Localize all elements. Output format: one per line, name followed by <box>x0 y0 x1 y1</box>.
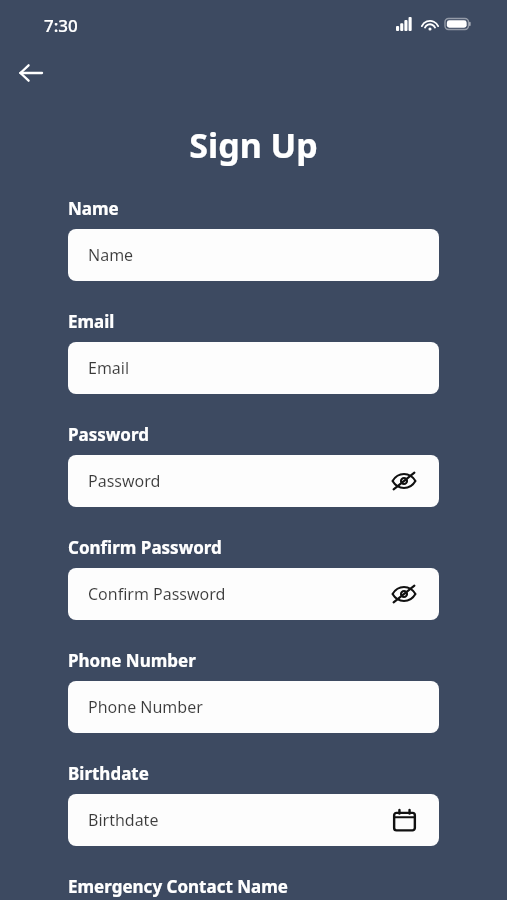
staticText: Password <box>88 470 161 492</box>
button[interactable]: Name <box>68 229 439 281</box>
button[interactable]: Toggle password visibility <box>389 466 419 496</box>
button[interactable]: Email <box>68 342 439 394</box>
button[interactable]: Confirm Password <box>68 568 439 620</box>
staticText: Confirm Password <box>68 536 222 559</box>
staticText: Sign Up <box>0 122 507 168</box>
button[interactable]: Password <box>68 455 439 507</box>
staticText: Name <box>68 197 119 220</box>
staticText: Password <box>68 423 149 446</box>
button[interactable]: Birthdate <box>68 794 439 846</box>
staticText: Phone Number <box>88 696 203 718</box>
staticText: Birthdate <box>88 809 159 831</box>
button[interactable]: Toggle password visibility <box>389 579 419 609</box>
button[interactable]: Pick date <box>389 805 419 835</box>
button[interactable]: Back <box>10 52 52 94</box>
staticText: Phone Number <box>68 649 196 672</box>
staticText: Email <box>68 310 115 333</box>
staticText: Name <box>88 244 134 266</box>
staticText: 7:30 <box>44 14 78 37</box>
staticText: Birthdate <box>68 762 149 785</box>
staticText: Emergency Contact Name <box>68 875 288 898</box>
staticText: Confirm Password <box>88 583 226 605</box>
button[interactable]: Phone Number <box>68 681 439 733</box>
staticText: Email <box>88 357 130 379</box>
